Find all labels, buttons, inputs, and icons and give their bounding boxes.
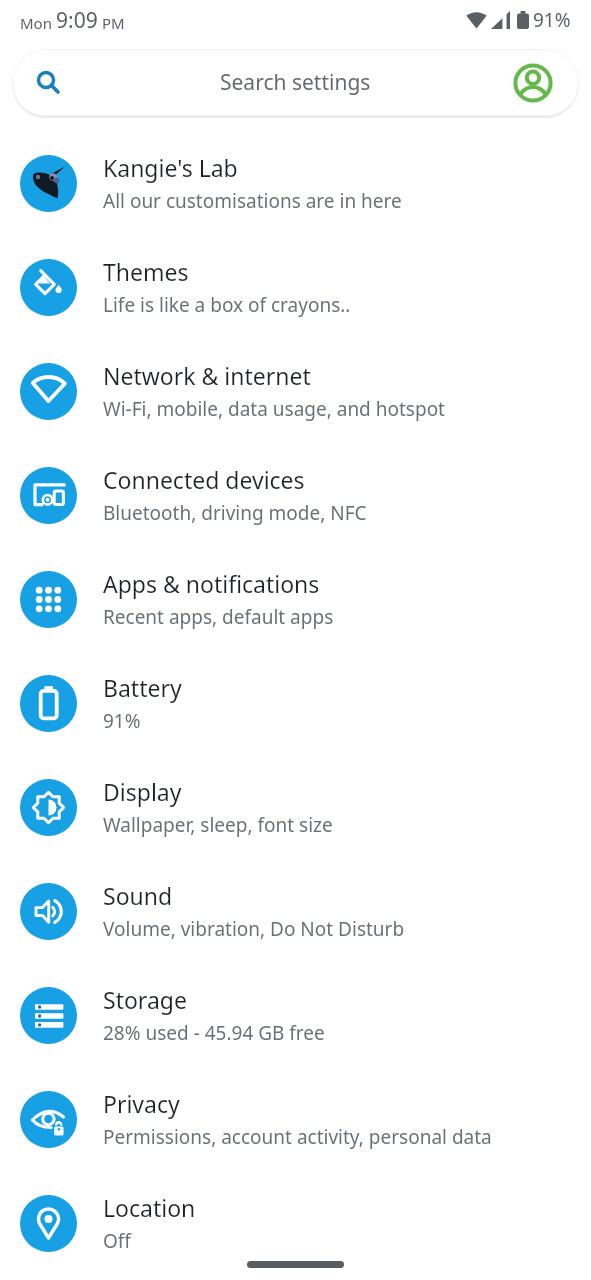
staticText: Network & internet xyxy=(103,360,311,391)
button[interactable] xyxy=(513,63,553,103)
staticText: Wallpaper, sleep, font size xyxy=(103,812,333,838)
button[interactable]: Search settings xyxy=(12,49,579,116)
button[interactable]: Battery xyxy=(0,651,591,755)
staticText: Themes xyxy=(103,256,189,287)
staticText: Location xyxy=(103,1192,196,1223)
staticText: Kangie's Lab xyxy=(103,152,238,183)
button[interactable]: Location xyxy=(0,1171,591,1275)
staticText: Mon xyxy=(20,13,56,33)
staticText: Storage xyxy=(103,984,187,1015)
staticText: Bluetooth, driving mode, NFC xyxy=(103,500,367,526)
button[interactable]: Sound xyxy=(0,859,591,963)
button[interactable]: Themes xyxy=(0,235,591,339)
button[interactable]: Storage xyxy=(0,963,591,1067)
staticText: Search settings xyxy=(220,68,371,97)
staticText: Life is like a box of crayons.. xyxy=(103,292,351,318)
staticText: Wi-Fi, mobile, data usage, and hotspot xyxy=(103,396,445,422)
button[interactable]: Network & internet xyxy=(0,339,591,443)
staticText: PM xyxy=(98,13,125,33)
staticText: Privacy xyxy=(103,1088,180,1119)
button[interactable]: Privacy xyxy=(0,1067,591,1171)
staticText: Battery xyxy=(103,672,182,703)
button[interactable]: Connected devices xyxy=(0,443,591,547)
staticText: Apps & notifications xyxy=(103,568,320,599)
staticText: Off xyxy=(103,1228,131,1254)
staticText: All our customisations are in here xyxy=(103,188,402,214)
button[interactable]: Kangie's Lab xyxy=(0,131,591,235)
staticText: Permissions, account activity, personal … xyxy=(103,1124,492,1150)
staticText: Display xyxy=(103,776,182,807)
staticText: 28% used - 45.94 GB free xyxy=(103,1020,325,1046)
button[interactable]: Apps & notifications xyxy=(0,547,591,651)
button[interactable]: Display xyxy=(0,755,591,859)
staticText: Connected devices xyxy=(103,464,305,495)
staticText: 91% xyxy=(103,708,141,734)
staticText: Recent apps, default apps xyxy=(103,604,334,630)
staticText: Volume, vibration, Do Not Disturb xyxy=(103,916,405,942)
staticText: 91% xyxy=(533,7,571,33)
staticText: Sound xyxy=(103,880,173,911)
staticText: 9:09 xyxy=(56,6,98,35)
